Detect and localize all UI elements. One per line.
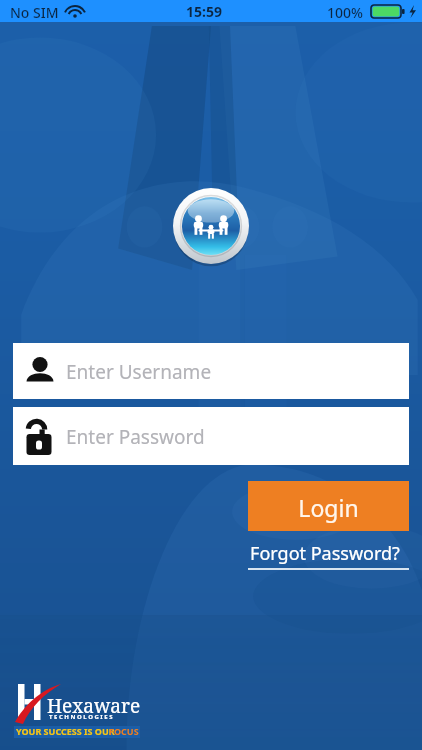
button[interactable]: Login <box>248 481 409 531</box>
staticText: FOCUS <box>109 725 139 737</box>
staticText: YOUR SUCCESS IS OUR <box>16 725 118 737</box>
button[interactable]: Password field <box>13 407 409 465</box>
staticText: Hexaware <box>47 693 141 719</box>
staticText: 100% <box>327 3 363 22</box>
staticText: Forgot Password? <box>240 541 410 573</box>
button[interactable]: Username field <box>13 343 409 399</box>
staticText: Enter Password <box>66 424 205 450</box>
staticText: No SIM <box>10 3 59 22</box>
staticText: 15:59 <box>186 2 222 21</box>
other: App logo <box>173 188 249 264</box>
button[interactable]: Forgot Password? <box>240 539 410 571</box>
staticText: Enter Username <box>66 359 212 385</box>
staticText: Login <box>248 492 409 542</box>
staticText: T E C H N O L O G I E S <box>49 713 113 721</box>
